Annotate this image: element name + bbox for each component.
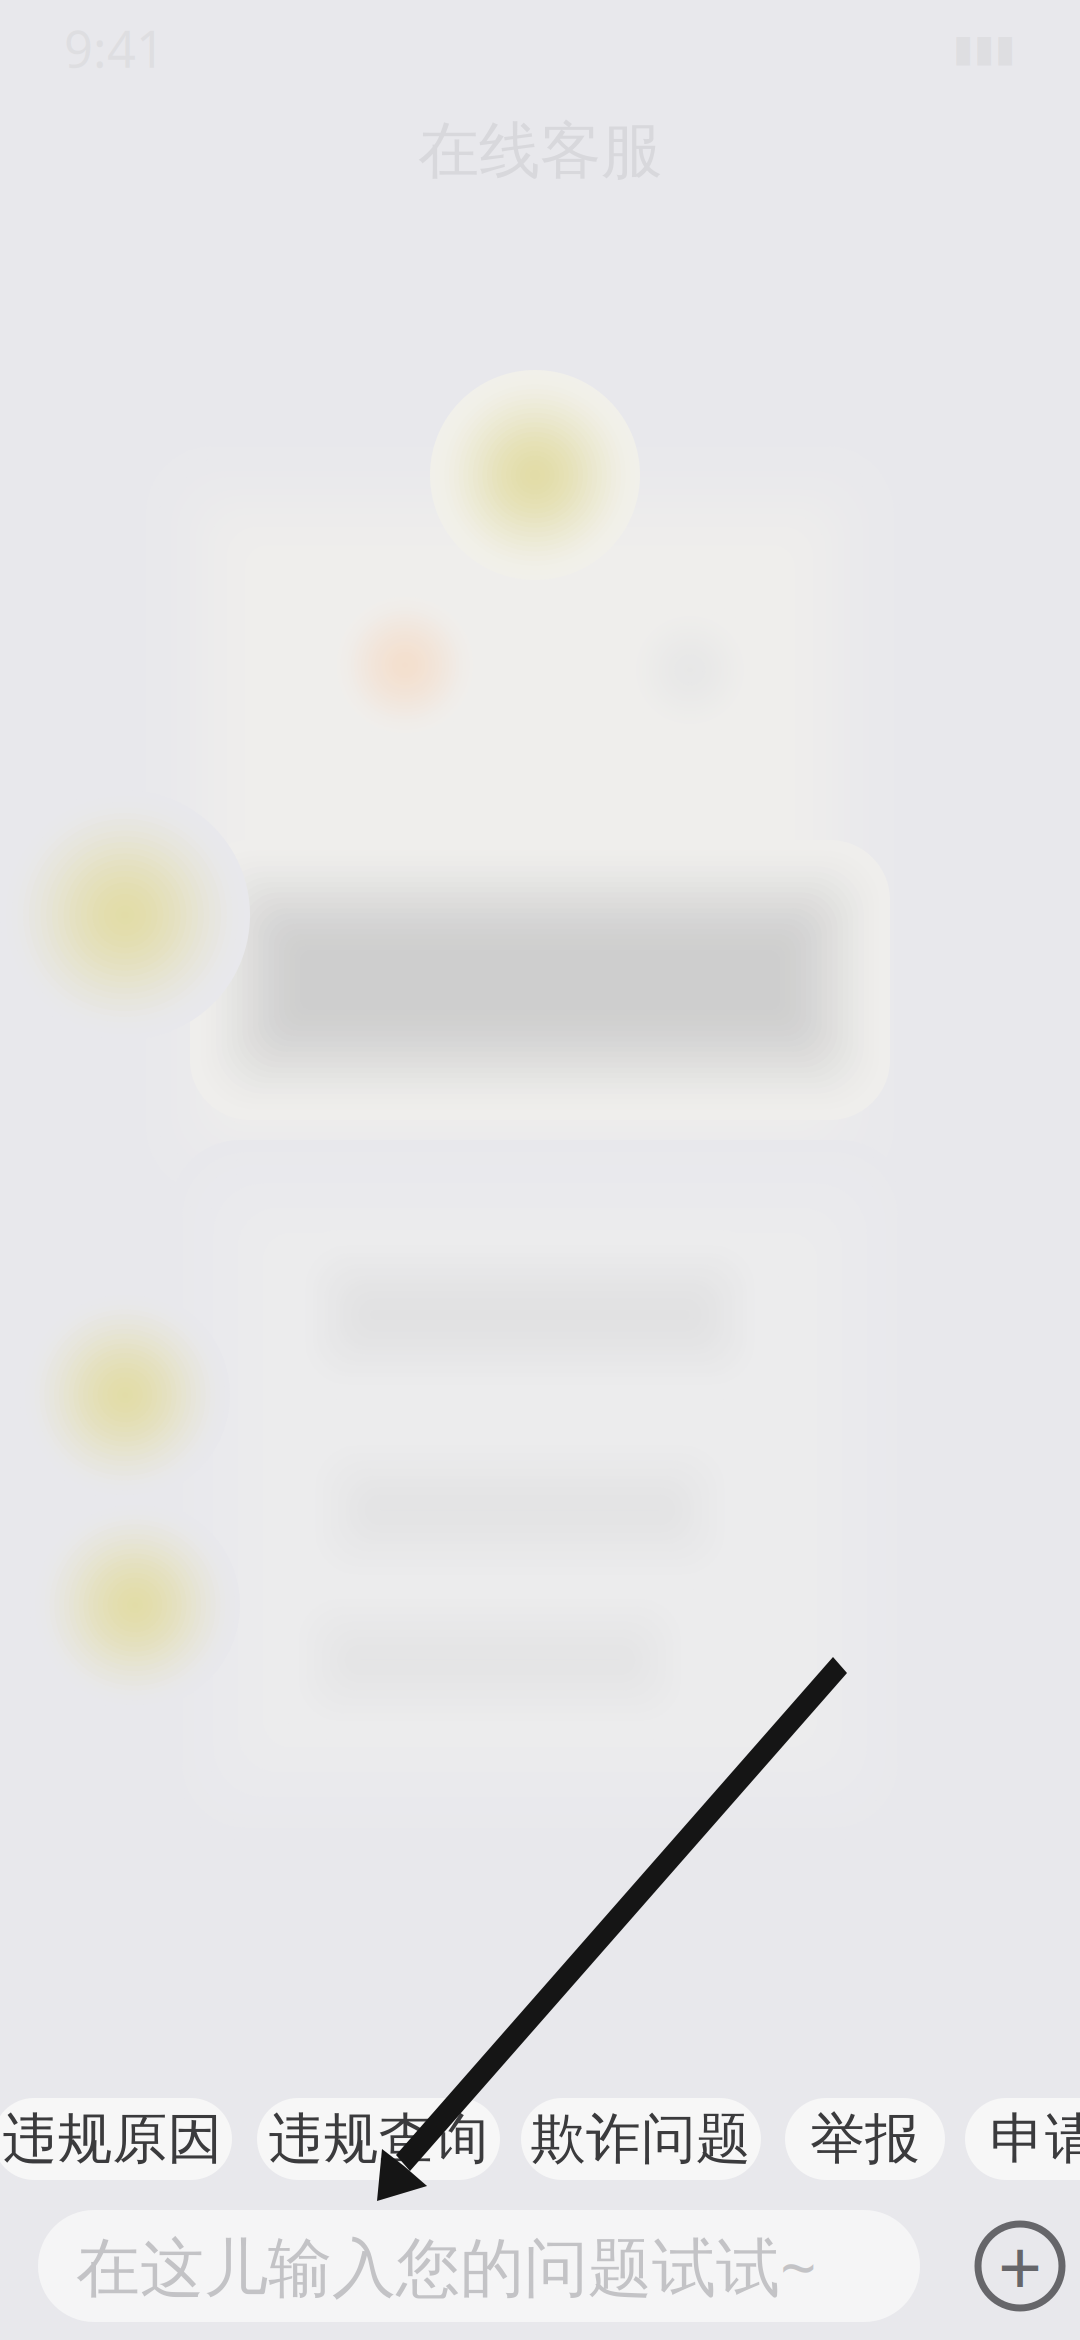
staticText: + — [998, 2215, 1042, 2317]
button[interactable]: 申请 — [965, 2098, 1080, 2180]
staticText: ▮▮▮ — [953, 27, 1016, 69]
button[interactable]: 违规查询 — [257, 2098, 500, 2180]
staticText: 违规查询 — [268, 2105, 488, 2172]
button[interactable]: 欺诈问题 — [521, 2098, 761, 2180]
button[interactable]: 举报 — [785, 2098, 945, 2180]
staticText: 违规原因 — [2, 2105, 222, 2172]
button[interactable]: 在这儿输入您的问题试试~ — [38, 2210, 920, 2322]
staticText: 在线客服 — [418, 113, 662, 189]
staticText: 申请 — [990, 2105, 1080, 2172]
staticText: 在这儿输入您的问题试试~ — [76, 2223, 817, 2308]
button[interactable]: 更多功能 — [960, 2210, 1080, 2322]
button[interactable]: 违规原因 — [0, 2098, 232, 2180]
staticText: 9:41 — [64, 14, 165, 82]
staticText: 欺诈问题 — [531, 2105, 751, 2172]
staticText: 举报 — [810, 2105, 920, 2172]
